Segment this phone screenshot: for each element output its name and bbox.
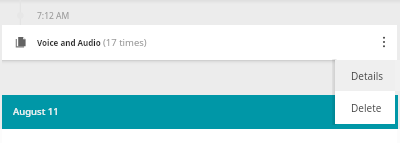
button[interactable]: August 11: [2, 95, 398, 129]
button[interactable]: Documents: [2, 25, 397, 60]
staticText: 7:12 AM: [37, 10, 70, 22]
button[interactable]: Details: [335, 60, 395, 91]
staticText: Details: [351, 69, 384, 83]
button[interactable]: Delete: [335, 91, 395, 124]
staticText: August 11: [13, 105, 59, 118]
button[interactable]: More options: [370, 25, 398, 59]
staticText: Delete: [351, 101, 382, 115]
staticText: Voice and Audio: [37, 37, 101, 48]
other: Documents: [15, 34, 28, 47]
staticText: (17 times): [103, 36, 147, 49]
